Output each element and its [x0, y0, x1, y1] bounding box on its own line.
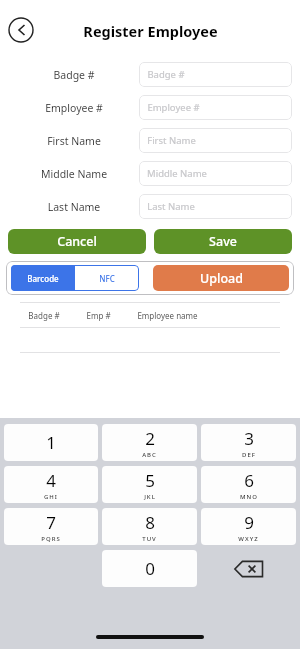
staticText: JKL: [144, 493, 156, 501]
button[interactable]: 1: [4, 424, 98, 461]
staticText: Employee #: [9, 101, 139, 115]
button[interactable]: Barcode: [11, 265, 75, 291]
staticText: Cancel: [57, 233, 97, 250]
button[interactable]: Cancel: [8, 229, 146, 254]
staticText: First Name: [147, 134, 196, 147]
staticText: 3: [244, 427, 254, 450]
button[interactable]: 8: [102, 508, 197, 545]
staticText: First Name: [9, 134, 139, 148]
staticText: 0: [145, 557, 155, 580]
button[interactable]: Middle Name: [139, 161, 292, 186]
button[interactable]: Back: [8, 17, 34, 43]
staticText: Middle Name: [9, 167, 139, 181]
button[interactable]: Save: [154, 229, 292, 254]
button[interactable]: 0: [102, 550, 197, 587]
staticText: Employee #: [147, 101, 200, 114]
button[interactable]: 5: [102, 466, 197, 503]
button[interactable]: First Name: [139, 128, 292, 153]
staticText: NFC: [99, 273, 115, 284]
staticText: GHI: [44, 493, 58, 501]
button[interactable]: 4: [4, 466, 98, 503]
staticText: MNO: [240, 493, 258, 501]
button[interactable]: Badge #: [139, 62, 292, 87]
staticText: 5: [145, 469, 155, 492]
staticText: Last Name: [147, 200, 195, 213]
staticText: Upload: [200, 270, 243, 287]
staticText: Badge #: [28, 310, 60, 321]
staticText: 9: [244, 511, 254, 534]
staticText: DEF: [242, 451, 256, 459]
button[interactable]: 3: [201, 424, 296, 461]
staticText: Badge #: [9, 68, 139, 82]
staticText: Badge #: [147, 68, 185, 81]
staticText: Middle Name: [147, 167, 207, 180]
staticText: 6: [244, 469, 254, 492]
staticText: WXYZ: [238, 535, 259, 543]
staticText: Emp #: [86, 310, 111, 321]
button[interactable]: Last Name: [139, 194, 292, 219]
staticText: 1: [46, 431, 56, 454]
staticText: Register Employee: [83, 21, 218, 41]
staticText: Barcode: [27, 273, 59, 284]
staticText: PQRS: [41, 535, 61, 543]
staticText: Employee name: [137, 310, 198, 321]
button[interactable]: Employee #: [139, 95, 292, 120]
button[interactable]: Delete: [201, 550, 296, 587]
staticText: ABC: [142, 451, 157, 459]
staticText: 8: [145, 511, 155, 534]
button[interactable]: 6: [201, 466, 296, 503]
staticText: Last Name: [9, 200, 139, 214]
button[interactable]: 7: [4, 508, 98, 545]
staticText: 2: [145, 427, 155, 450]
button[interactable]: NFC: [75, 265, 139, 291]
staticText: 7: [46, 511, 56, 534]
staticText: 4: [46, 469, 56, 492]
button[interactable]: 9: [201, 508, 296, 545]
button[interactable]: Upload: [153, 265, 289, 291]
staticText: Save: [209, 233, 237, 250]
button[interactable]: 2: [102, 424, 197, 461]
staticText: TUV: [142, 535, 157, 543]
